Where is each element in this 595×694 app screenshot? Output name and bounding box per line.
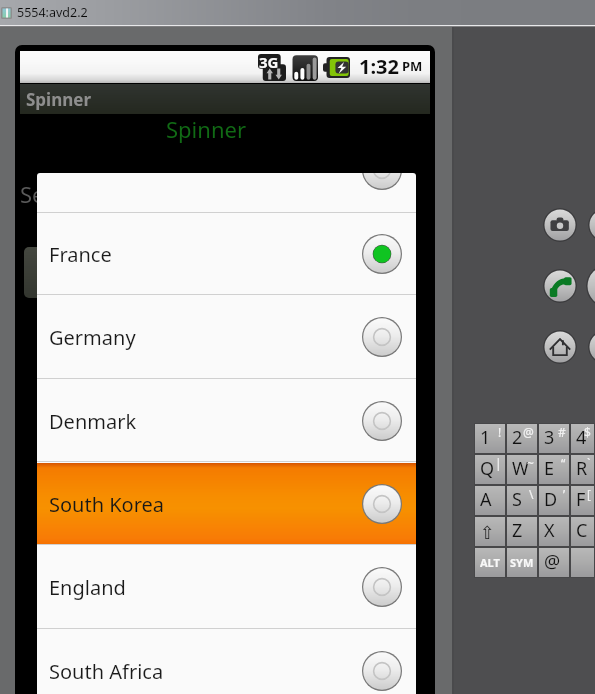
button[interactable]: Search xyxy=(588,330,595,364)
staticText: E xyxy=(544,456,555,481)
staticText: D xyxy=(544,487,558,512)
staticText: PM xyxy=(402,57,423,75)
staticText: 5554:avd2.2 xyxy=(17,4,88,21)
staticText: Spinner xyxy=(26,88,92,111)
button[interactable]: Menu xyxy=(588,208,595,242)
button[interactable]: X xyxy=(539,517,569,546)
staticText: 2 xyxy=(512,425,523,450)
staticText: 4 xyxy=(576,425,587,450)
staticText: SYM xyxy=(510,555,534,570)
button[interactable]: C xyxy=(571,517,594,546)
other: Not selected xyxy=(362,484,402,524)
staticText: \ xyxy=(529,486,534,502)
staticText: [ xyxy=(587,486,591,502)
button[interactable]: 4 xyxy=(571,424,594,453)
button[interactable]: Camera xyxy=(543,208,577,242)
button[interactable]: E xyxy=(539,455,569,484)
button[interactable]: SYM xyxy=(507,548,537,577)
staticText: ⇧ xyxy=(480,522,496,543)
staticText: S xyxy=(512,487,522,512)
other: Not selected xyxy=(362,401,402,441)
button[interactable]: Not selected xyxy=(362,173,402,190)
button[interactable]: Call xyxy=(543,269,577,303)
button[interactable]: W xyxy=(507,455,537,484)
button[interactable]: Home xyxy=(543,330,577,364)
button[interactable]: England xyxy=(37,546,416,628)
staticText: A xyxy=(480,487,492,512)
staticText: “ xyxy=(561,455,566,471)
staticText: 3G xyxy=(259,52,279,72)
staticText: Germany xyxy=(49,324,136,351)
staticText: ALT xyxy=(480,555,500,570)
staticText: @ xyxy=(523,424,534,440)
staticText: X xyxy=(544,518,555,543)
staticText: 3 xyxy=(544,425,555,450)
button[interactable]: Denmark xyxy=(37,380,416,462)
other: Selected xyxy=(362,234,402,274)
staticText: South Africa xyxy=(49,658,164,685)
button[interactable]: 2 xyxy=(507,424,537,453)
button[interactable]: S xyxy=(507,486,537,515)
staticText: $ xyxy=(584,424,591,440)
staticText: ` xyxy=(587,455,591,471)
staticText: Spinner xyxy=(166,114,246,144)
button[interactable]: Back xyxy=(586,264,595,308)
staticText: F xyxy=(576,487,586,512)
button[interactable]: Germany xyxy=(37,296,416,378)
button[interactable]: Z xyxy=(507,517,537,546)
staticText: @ xyxy=(544,549,561,574)
button[interactable]: South Korea xyxy=(37,463,416,545)
staticText: 1 xyxy=(480,425,491,450)
staticText: ’ xyxy=(563,486,566,502)
staticText: Denmark xyxy=(49,408,137,435)
staticText: France xyxy=(49,241,112,268)
button[interactable] xyxy=(24,247,214,298)
button[interactable]: R xyxy=(571,455,594,484)
other: Not selected xyxy=(362,317,402,357)
staticText: R xyxy=(576,456,588,481)
staticText: Q xyxy=(480,456,495,481)
staticText: 1:32 xyxy=(359,53,399,80)
staticText: # xyxy=(558,424,566,440)
button[interactable]: France xyxy=(37,213,416,295)
staticText: England xyxy=(49,574,126,601)
button[interactable]: 3 xyxy=(539,424,569,453)
other: Not selected xyxy=(362,173,402,190)
other: Not selected xyxy=(362,651,402,691)
button[interactable]: ALT xyxy=(475,548,505,577)
staticText: C xyxy=(576,518,588,543)
button[interactable]: South Africa xyxy=(37,630,416,694)
staticText: South Korea xyxy=(49,491,165,518)
other: Not selected xyxy=(362,567,402,607)
button[interactable]: 1 xyxy=(475,424,505,453)
staticText: Z xyxy=(512,518,523,543)
button[interactable]: A xyxy=(475,486,505,515)
button[interactable]: D xyxy=(539,486,569,515)
staticText: ~ xyxy=(527,455,534,471)
button[interactable]: ⇧ xyxy=(475,517,505,546)
staticText: W xyxy=(512,456,529,481)
staticText: | xyxy=(495,455,502,471)
button[interactable]: F xyxy=(571,486,594,515)
button[interactable]: @ xyxy=(539,548,569,577)
staticText: Select xyxy=(20,179,82,209)
staticText: ! xyxy=(498,424,502,440)
button[interactable]: Q xyxy=(475,455,505,484)
button[interactable] xyxy=(571,548,594,577)
